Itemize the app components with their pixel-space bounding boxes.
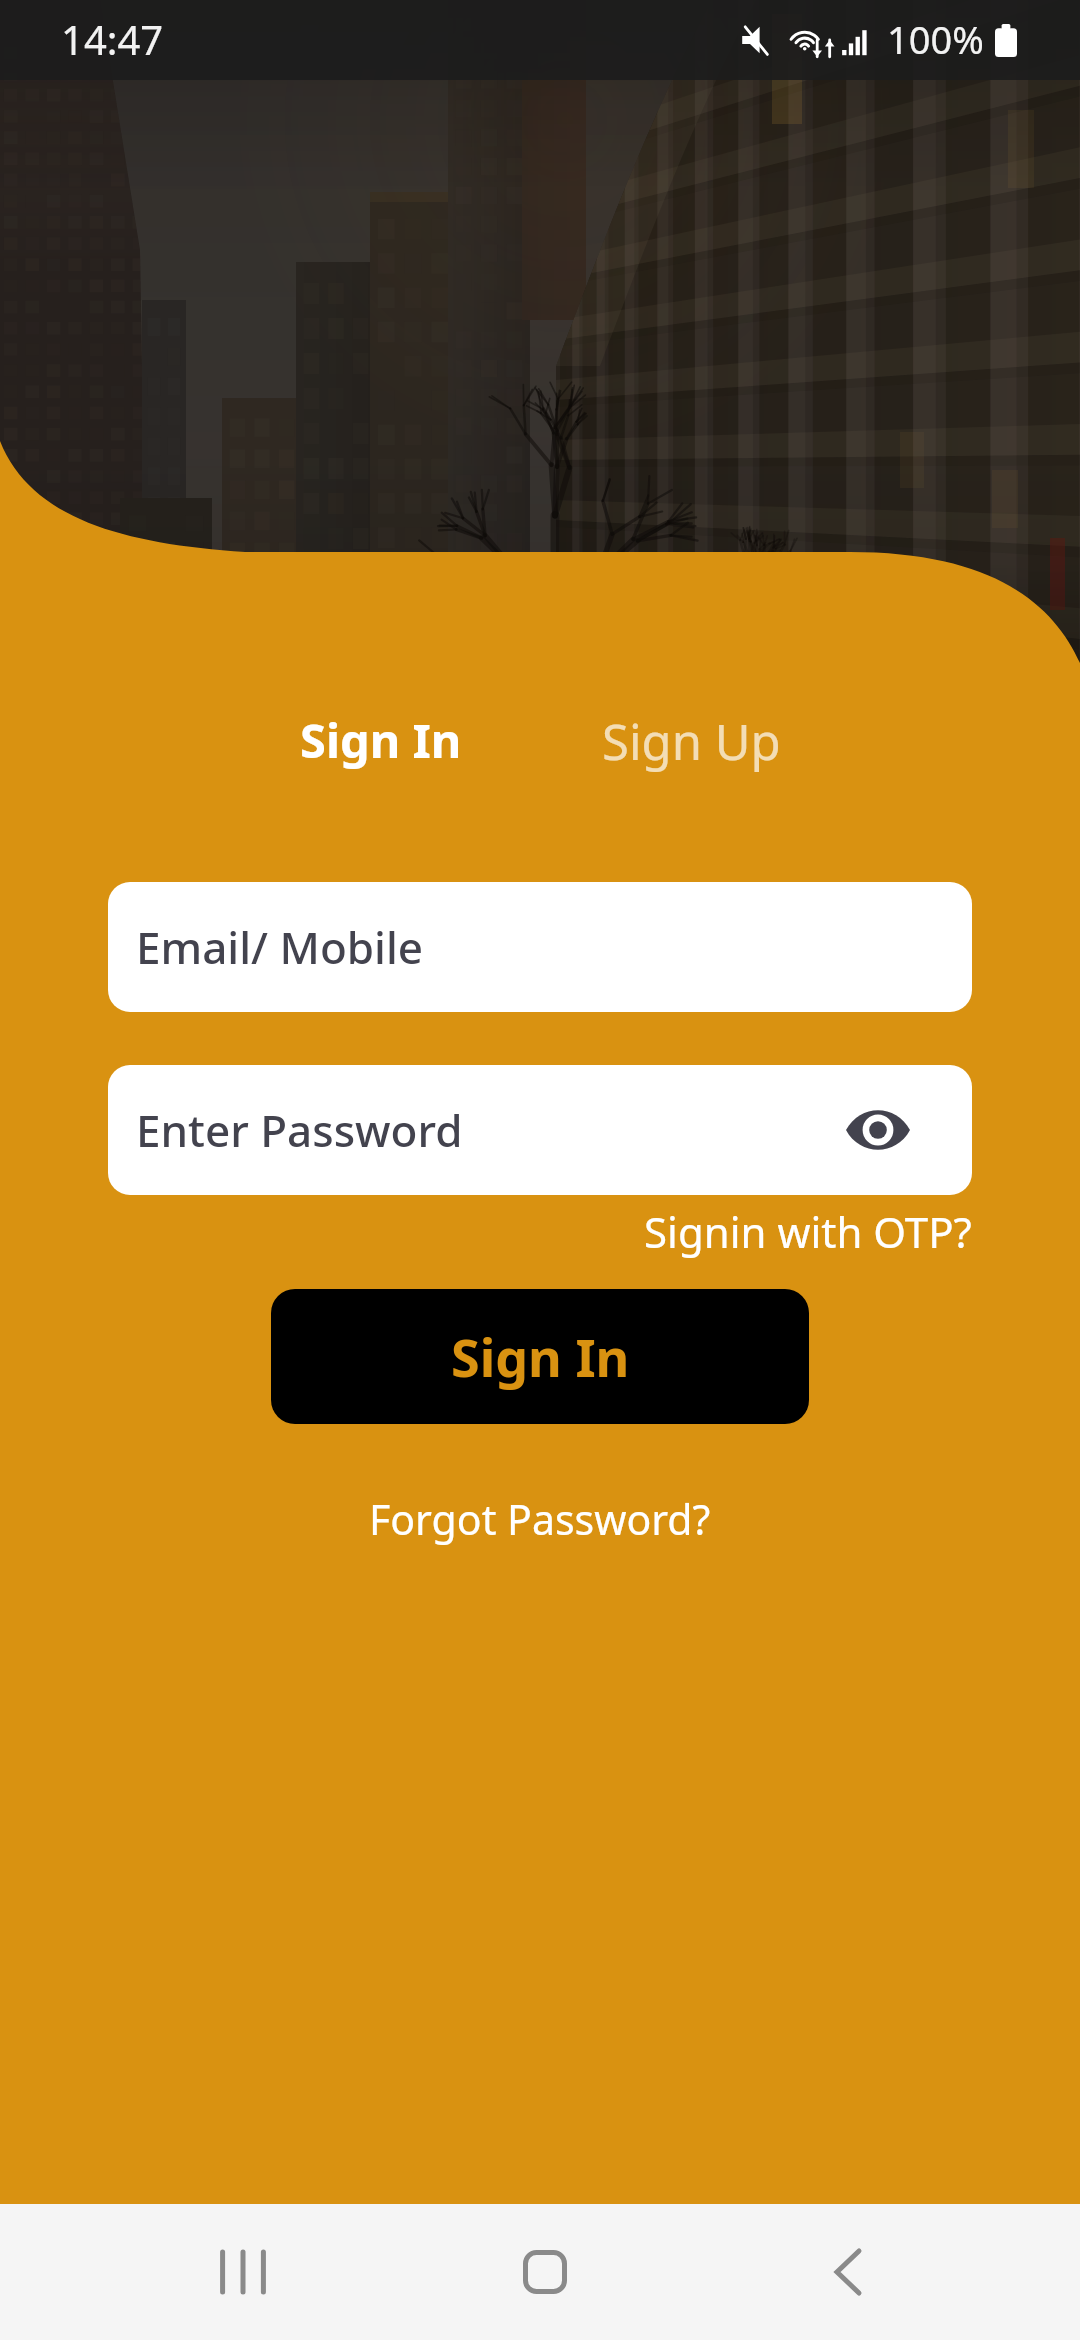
button[interactable]: Recent apps — [173, 2204, 313, 2340]
button[interactable]: Enter Password — [108, 1065, 972, 1195]
staticText: Sign Up — [602, 708, 781, 775]
button[interactable]: Show password — [836, 1088, 920, 1172]
staticText: Enter Password — [136, 1100, 463, 1160]
button[interactable]: Forgot Password? — [363, 1485, 717, 1553]
staticText: 100% — [887, 13, 984, 65]
button[interactable]: Back — [778, 2204, 918, 2340]
staticText: Email/ Mobile — [136, 917, 424, 977]
staticText: Forgot Password? — [369, 1491, 711, 1547]
button[interactable]: Sign In — [292, 702, 470, 778]
button[interactable]: Home — [475, 2204, 615, 2340]
button[interactable]: Sign Up — [594, 702, 789, 781]
button[interactable]: Sign In — [271, 1289, 809, 1424]
staticText: Sign In — [300, 708, 462, 772]
staticText: Sign In — [451, 1321, 630, 1392]
button[interactable]: Signin with OTP? — [640, 1199, 976, 1264]
staticText: Signin with OTP? — [644, 1203, 972, 1260]
staticText: 14:47 — [61, 12, 164, 66]
button[interactable]: Email/ Mobile — [108, 882, 972, 1012]
